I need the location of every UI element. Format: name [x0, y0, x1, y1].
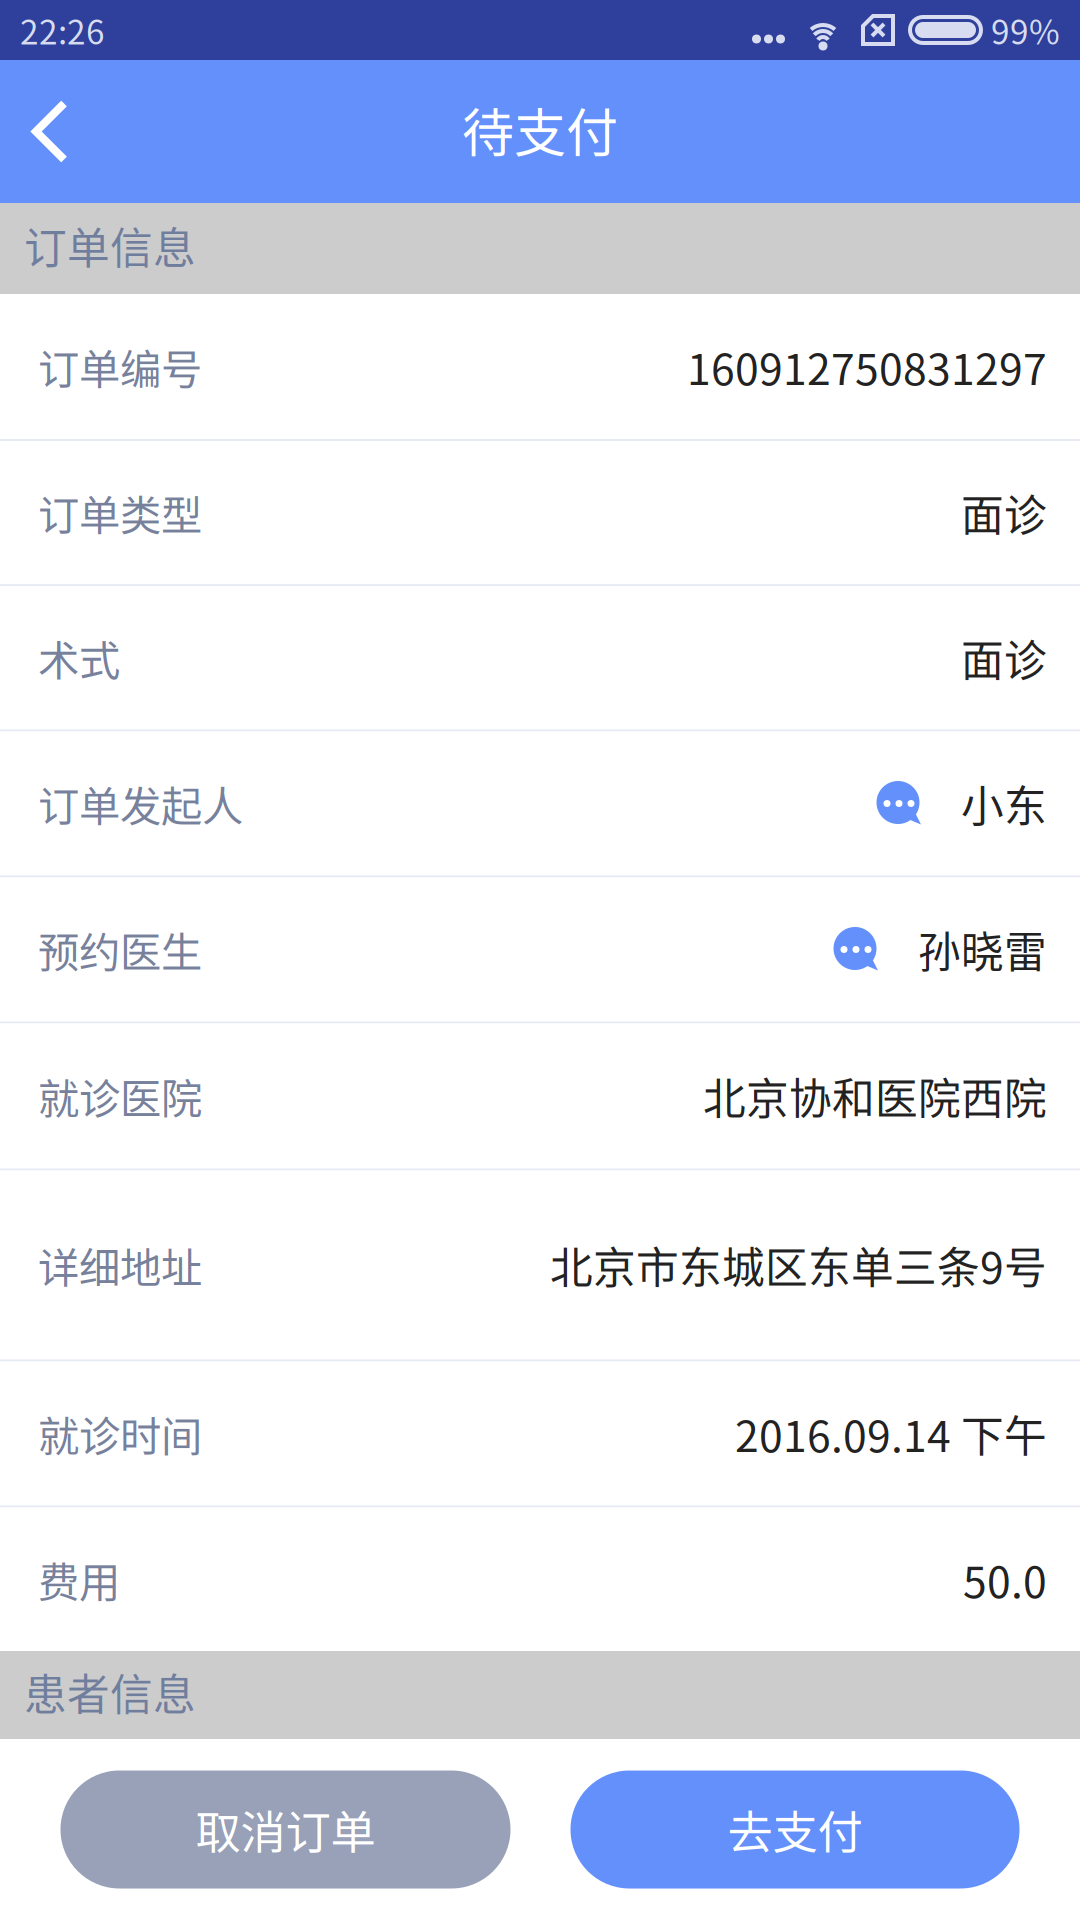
- staticText: 北京市东城区东单三条9号: [550, 1234, 1047, 1296]
- button[interactable]: 去支付: [570, 1770, 1019, 1888]
- staticText: 订单发起人: [38, 774, 243, 833]
- button[interactable]: 订单发起人: [0, 731, 1080, 875]
- staticText: 预约医生: [38, 920, 202, 979]
- staticText: 费用: [38, 1549, 120, 1609]
- staticText: 详细地址: [38, 1235, 202, 1295]
- staticText: 患者信息: [24, 1661, 196, 1723]
- staticText: 99%: [991, 6, 1060, 54]
- staticText: 术式: [38, 628, 120, 688]
- staticText: 就诊时间: [38, 1404, 202, 1463]
- staticText: 小东: [961, 773, 1047, 834]
- staticText: 取消订单: [195, 1797, 375, 1862]
- staticText: 22:26: [20, 6, 105, 54]
- button[interactable]: 详细地址: [0, 1170, 1080, 1359]
- staticText: 订单编号: [38, 337, 202, 396]
- button[interactable]: 费用: [0, 1507, 1080, 1651]
- button[interactable]: Back: [0, 60, 100, 203]
- staticText: 160912750831297: [687, 336, 1047, 397]
- button[interactable]: 取消订单: [60, 1770, 510, 1888]
- button[interactable]: 预约医生: [0, 877, 1080, 1021]
- staticText: 订单信息: [24, 215, 196, 276]
- staticText: 北京协和医院西院: [703, 1065, 1047, 1127]
- button[interactable]: 术式: [0, 586, 1080, 729]
- staticText: 孙晓雷: [918, 919, 1047, 980]
- staticText: 面诊: [961, 482, 1047, 543]
- staticText: 50.0: [963, 1548, 1047, 1610]
- staticText: 订单类型: [38, 483, 202, 543]
- staticText: 2016.09.14 下午: [735, 1403, 1047, 1464]
- button[interactable]: 订单类型: [0, 441, 1080, 584]
- staticText: 待支付: [462, 92, 618, 167]
- button[interactable]: 订单编号: [0, 294, 1080, 439]
- button[interactable]: 就诊医院: [0, 1023, 1080, 1168]
- staticText: 去支付: [727, 1797, 862, 1862]
- staticText: 面诊: [961, 627, 1047, 689]
- button[interactable]: 就诊时间: [0, 1361, 1080, 1505]
- staticText: 就诊医院: [38, 1066, 202, 1126]
